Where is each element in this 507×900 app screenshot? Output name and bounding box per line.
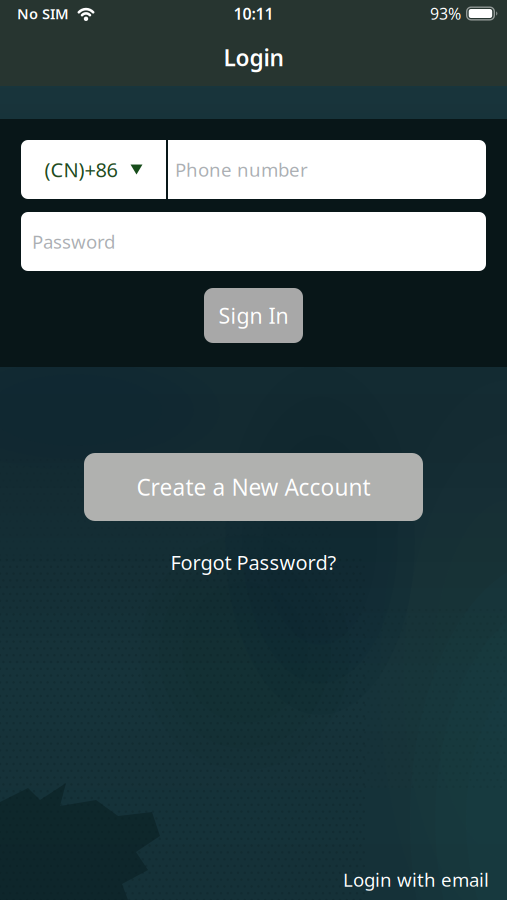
staticText: 93% (430, 3, 461, 24)
staticText: Create a New Account (136, 472, 370, 502)
staticText: Login with email (343, 867, 489, 892)
staticText: Password (32, 229, 115, 254)
button[interactable]: Password (21, 212, 486, 271)
button[interactable]: Create a New Account (84, 453, 423, 521)
staticText: Phone number (175, 157, 308, 182)
staticText: 10:11 (233, 3, 273, 24)
button[interactable]: Phone number (168, 140, 486, 199)
button[interactable]: Forgot Password? (162, 547, 344, 578)
staticText: Forgot Password? (170, 549, 336, 576)
staticText: Login (223, 42, 283, 72)
button[interactable]: Login with email (343, 867, 489, 892)
staticText: Sign In (218, 301, 288, 330)
button[interactable]: Country code (CN)+86 (21, 140, 166, 199)
staticText: (CN)+86 (44, 156, 117, 183)
button[interactable]: Sign In (204, 288, 303, 343)
staticText: No SIM (17, 4, 69, 23)
